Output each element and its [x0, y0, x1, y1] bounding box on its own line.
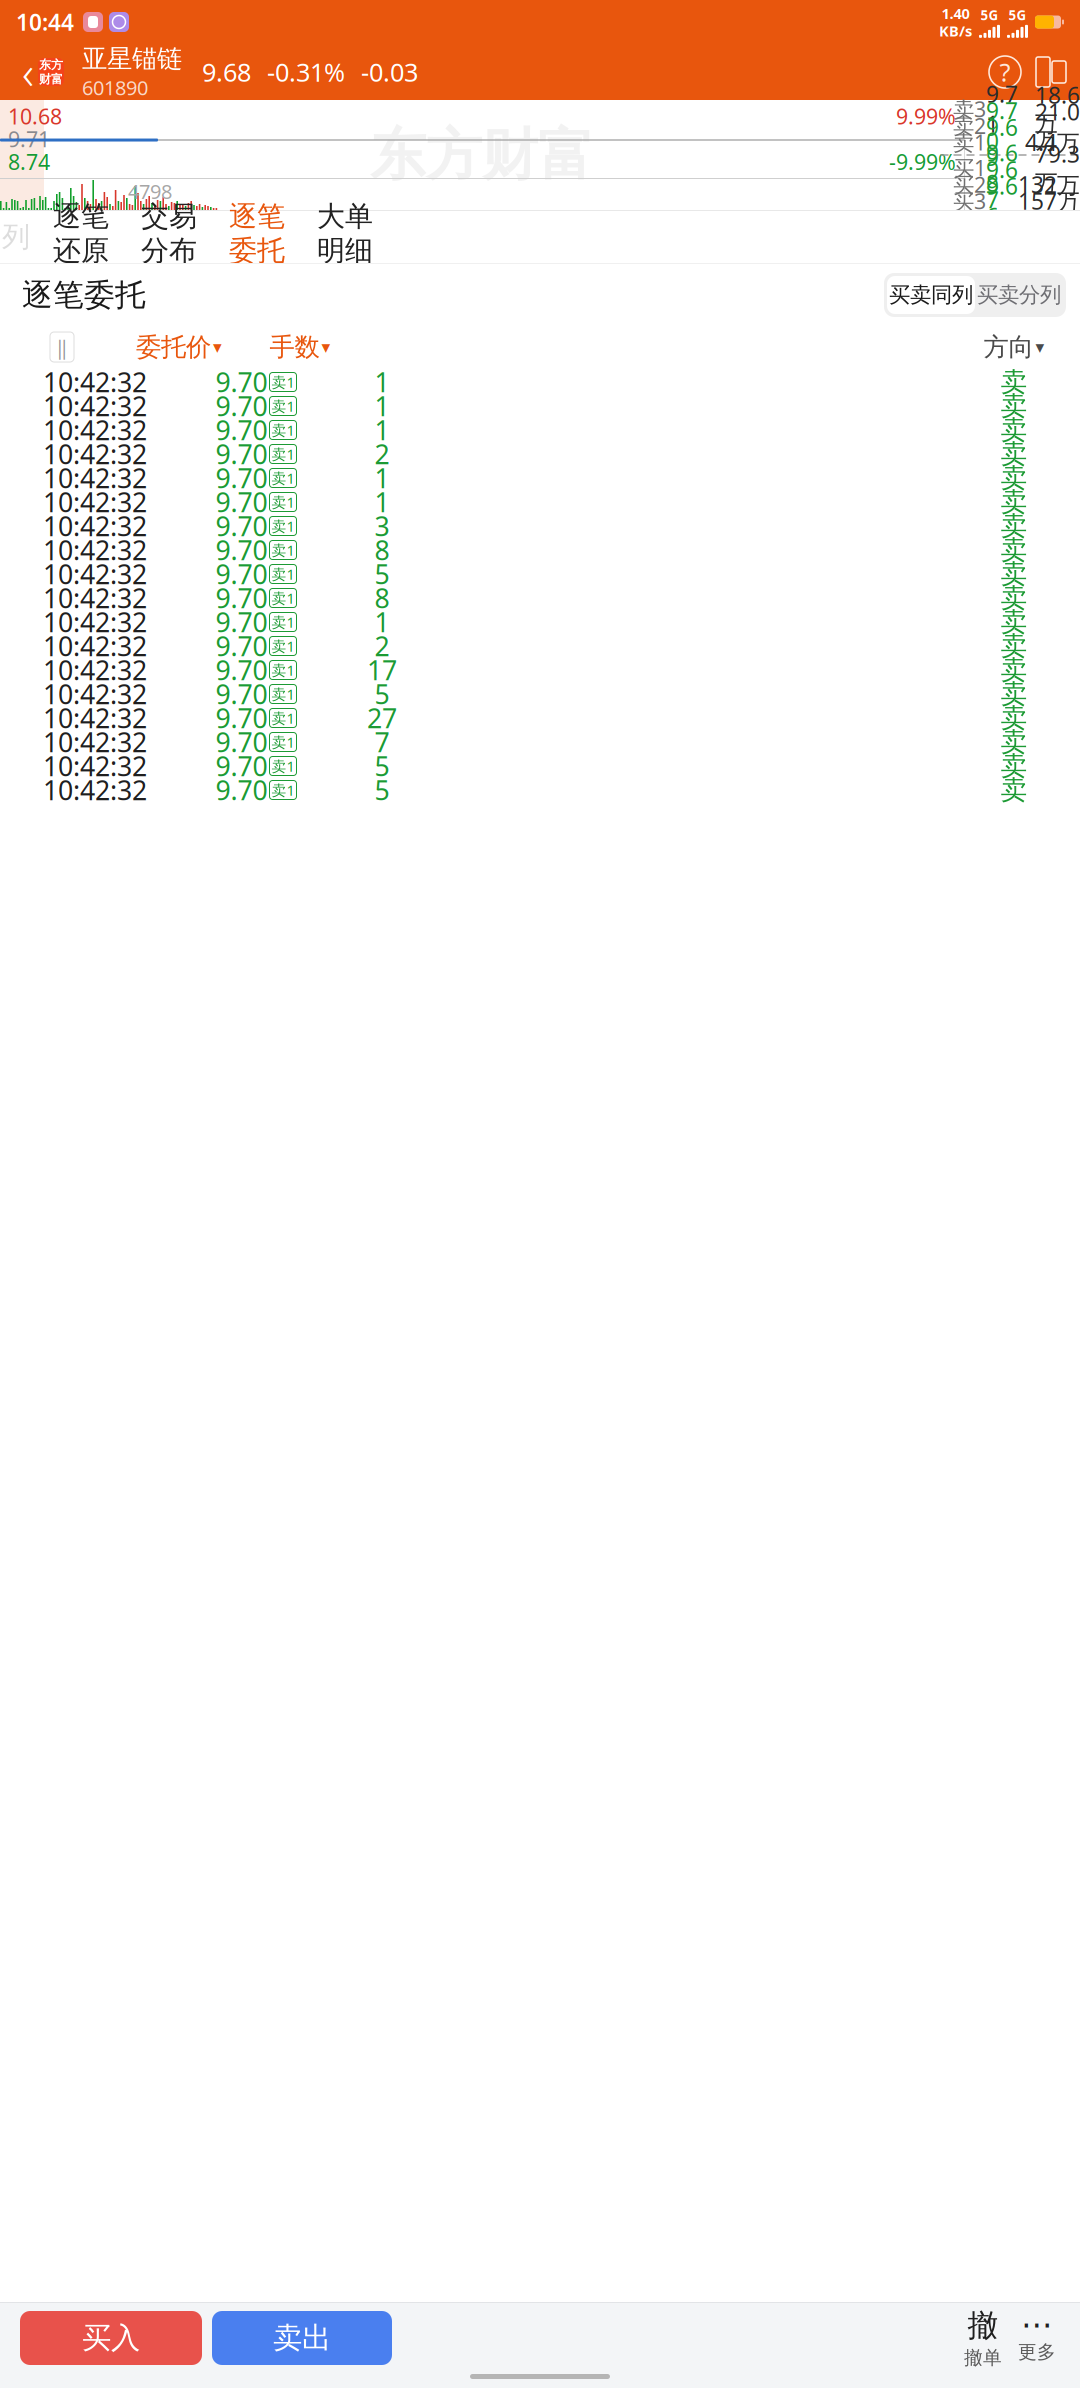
staticText: ▾: [213, 337, 222, 357]
staticText: 卖1: [271, 684, 294, 704]
button[interactable]: 卖出: [212, 2311, 392, 2365]
button[interactable]: 10:42:32: [0, 442, 1080, 466]
button[interactable]: 10:42:32: [0, 658, 1080, 682]
staticText: 1: [374, 604, 389, 640]
staticText: 8.74: [8, 148, 50, 176]
button[interactable]: 交易分布: [128, 211, 210, 263]
button[interactable]: 10:42:32: [0, 370, 1080, 394]
staticText: 大单明细: [317, 199, 373, 268]
button[interactable]: 10:42:32: [0, 490, 1080, 514]
staticText: ⋯: [1021, 2306, 1053, 2343]
staticText: 7: [374, 724, 389, 760]
button[interactable]: 10:42:32: [0, 466, 1080, 490]
button[interactable]: 10:42:32: [0, 586, 1080, 610]
staticText: 5G: [1008, 6, 1026, 24]
button[interactable]: 10:42:32: [0, 778, 1080, 802]
staticText: 卖3: [953, 95, 986, 123]
staticText: 1: [374, 364, 389, 400]
button[interactable]: 10:42:32: [0, 610, 1080, 634]
button[interactable]: 10:42:32: [0, 754, 1080, 778]
staticText: 卖: [1000, 678, 1027, 710]
staticText: 9.70: [215, 676, 267, 712]
staticText: 5: [374, 556, 389, 592]
staticText: 买入: [82, 2320, 140, 2356]
staticText: 卖1: [271, 660, 294, 680]
staticText: 卖2: [953, 111, 986, 140]
staticText: 1: [374, 388, 389, 424]
staticText: 9.69: [986, 112, 1018, 172]
staticText: 财富: [39, 72, 63, 87]
button[interactable]: 买卖同列: [887, 276, 975, 314]
staticText: 27: [367, 700, 397, 736]
button[interactable]: 撤: [956, 2309, 1010, 2367]
button[interactable]: 返回: [6, 44, 80, 100]
staticText: 5: [374, 676, 389, 712]
staticText: 卖1: [271, 780, 294, 800]
button[interactable]: 10:42:32: [0, 394, 1080, 418]
staticText: 1: [374, 460, 389, 496]
staticText: 10:42:32: [43, 628, 147, 664]
button[interactable]: 帮助: [982, 44, 1028, 100]
staticText: 卖: [1000, 438, 1027, 470]
button[interactable]: 买卖分列: [975, 276, 1063, 314]
staticText: 601890: [82, 74, 148, 101]
staticText: 买2: [953, 170, 986, 198]
button[interactable]: 横屏: [1028, 44, 1074, 100]
staticText: 10:42:32: [43, 460, 147, 496]
staticText: 4.4万: [1025, 127, 1080, 157]
button[interactable]: 10:42:32: [0, 514, 1080, 538]
staticText: 1: [374, 412, 389, 448]
staticText: 卖: [1000, 702, 1027, 734]
button[interactable]: 暂停: [50, 332, 74, 362]
staticText: 卖: [1000, 774, 1027, 806]
staticText: 逐笔还原: [53, 199, 109, 268]
staticText: 9.70: [215, 748, 267, 784]
staticText: 9.70: [215, 700, 267, 736]
button[interactable]: 10:42:32: [0, 634, 1080, 658]
button[interactable]: 委托价: [124, 327, 234, 367]
staticText: 9.66: [986, 171, 1018, 231]
staticText: ▾: [321, 337, 330, 357]
button[interactable]: 10:42:32: [0, 562, 1080, 586]
staticText: 卖出: [273, 2320, 331, 2356]
staticText: 9.70: [215, 508, 267, 544]
staticText: 卖: [1000, 366, 1027, 398]
button[interactable]: 10:42:32: [0, 682, 1080, 706]
staticText: 卖1: [271, 636, 294, 656]
staticText: 卖: [1000, 726, 1027, 758]
button[interactable]: 大单明细: [304, 211, 386, 263]
staticText: 9.70: [215, 388, 267, 424]
staticText: 10:42:32: [43, 556, 147, 592]
staticText: 9.71: [8, 125, 50, 153]
staticText: 卖: [1000, 750, 1027, 782]
staticText: 手数: [269, 331, 319, 362]
button[interactable]: 逐笔还原: [40, 211, 122, 263]
staticText: 9.68: [986, 138, 1018, 198]
button[interactable]: 逐笔委托: [216, 211, 298, 263]
button[interactable]: 10:42:32: [0, 706, 1080, 730]
button[interactable]: 10:42:32: [0, 418, 1080, 442]
staticText: 10:42:32: [43, 676, 147, 712]
staticText: 9.70: [215, 580, 267, 616]
staticText: 9.71: [986, 79, 1018, 139]
staticText: 卖1: [271, 732, 294, 752]
staticText: 18.6万: [1035, 80, 1080, 138]
staticText: 10:42:32: [43, 724, 147, 760]
staticText: 卖: [1000, 486, 1027, 518]
button[interactable]: ⋯: [1010, 2309, 1064, 2367]
button[interactable]: 10:42:32: [0, 538, 1080, 562]
button[interactable]: 买入: [20, 2311, 202, 2365]
staticText: 9.67: [986, 154, 1018, 214]
staticText: 9.70: [215, 436, 267, 472]
staticText: 卖: [1000, 414, 1027, 446]
staticText: 卖1: [271, 468, 294, 488]
staticText: 8: [374, 580, 389, 616]
staticText: 卖1: [271, 612, 294, 632]
staticText: 卖: [1000, 606, 1027, 638]
staticText: 9.99%: [896, 102, 956, 130]
button[interactable]: 10:42:32: [0, 730, 1080, 754]
button[interactable]: 手数: [252, 327, 348, 367]
staticText: 买卖同列: [889, 282, 973, 308]
staticText: 逐笔委托: [22, 276, 146, 314]
button[interactable]: 方向: [974, 327, 1054, 367]
